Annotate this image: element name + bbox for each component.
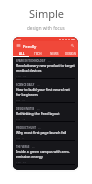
staticText: Revolutionary new product to target medi… xyxy=(16,63,75,73)
button[interactable]: DESIGN NOTES xyxy=(13,105,78,124)
button[interactable]: SCIENCE DAILY xyxy=(13,81,78,105)
staticText: ALL xyxy=(19,52,25,56)
staticText: 6h xyxy=(38,126,41,129)
staticText: Inside a green campus with zero-emission… xyxy=(16,149,75,159)
staticText: 1.5K 63 xyxy=(16,160,26,163)
staticText: SPARK IN TECHNOLOGY xyxy=(16,59,46,62)
staticText: 512 18 xyxy=(16,117,26,120)
button[interactable]: Open navigation menu xyxy=(16,43,21,48)
staticText: Rethinking the Feed layout xyxy=(16,111,75,116)
staticText: 3h xyxy=(37,83,40,86)
button[interactable]: THE VERGE xyxy=(13,143,78,167)
staticText: SCIENCE DAILY xyxy=(16,83,35,86)
staticText: DESIGN NOTES xyxy=(16,107,35,110)
button[interactable]: PRODUCT HUNT xyxy=(13,124,78,143)
staticText: DESIGN xyxy=(65,52,76,56)
staticText: Simple xyxy=(29,6,64,21)
button[interactable]: WIRED MAGAZINE xyxy=(13,167,78,170)
staticText: TECH xyxy=(34,52,42,56)
staticText: 5h xyxy=(37,107,40,110)
staticText: 2h xyxy=(48,59,51,62)
staticText: 8h xyxy=(32,145,35,148)
button[interactable]: ALL xyxy=(13,50,30,57)
button[interactable]: SPARK IN TECHNOLOGY xyxy=(13,57,78,81)
button[interactable]: TECH xyxy=(30,50,46,57)
staticText: NEWS xyxy=(50,52,59,56)
staticText: 860 21 xyxy=(16,98,26,101)
staticText: PRODUCT HUNT xyxy=(16,126,36,129)
staticText: 344 9 xyxy=(16,136,24,139)
button[interactable]: NEWS xyxy=(46,50,62,57)
staticText: Why most first page launch fail xyxy=(16,130,75,135)
staticText: 1.2K 44 xyxy=(16,74,26,77)
staticText: THE VERGE xyxy=(16,145,30,148)
button[interactable]: Search xyxy=(70,43,75,48)
button[interactable]: DESIGN xyxy=(62,50,78,57)
staticText: How to build your first neural net for b… xyxy=(16,87,75,97)
staticText: Feedly xyxy=(23,43,37,49)
staticText: design with focus xyxy=(27,25,65,31)
